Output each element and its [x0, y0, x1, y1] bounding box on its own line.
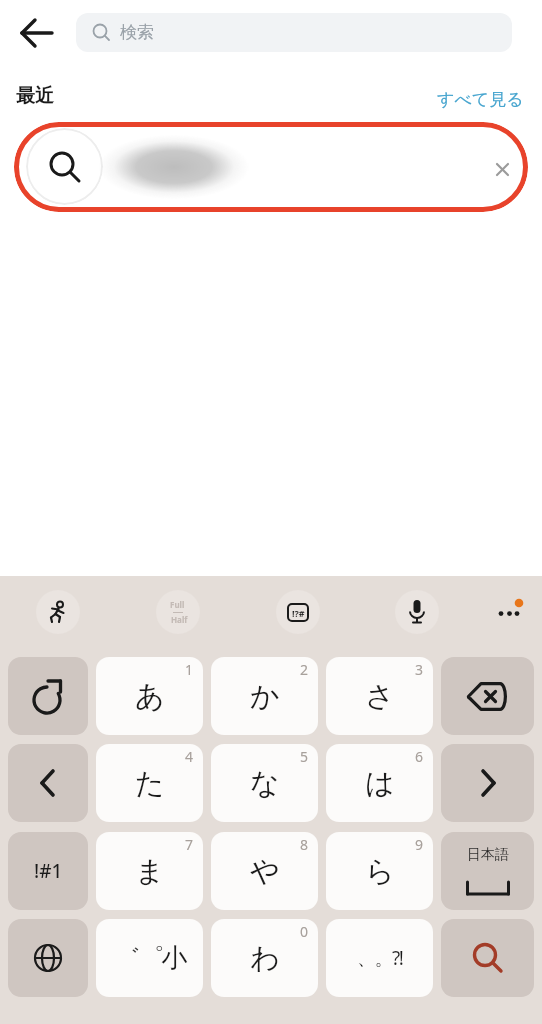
staticText: ま [135, 853, 165, 890]
staticText: や [250, 853, 280, 890]
button[interactable] [395, 590, 439, 634]
staticText: 7 [185, 835, 194, 854]
staticText: 最近 [16, 84, 54, 108]
button[interactable] [441, 919, 534, 997]
staticText: Full [170, 599, 185, 610]
button[interactable]: た [96, 744, 203, 822]
button[interactable]: は [326, 744, 433, 822]
staticText: 2 [300, 660, 309, 679]
staticText: 、。?! [357, 945, 403, 971]
staticText: 4 [185, 747, 194, 766]
staticText: 日本語 [467, 846, 509, 864]
button[interactable]: ま [96, 832, 203, 910]
staticText: 5 [300, 747, 309, 766]
staticText: 3 [415, 660, 424, 679]
button[interactable] [8, 919, 88, 997]
staticText: さ [365, 678, 395, 715]
button[interactable]: や [211, 832, 318, 910]
button[interactable]: あ [96, 657, 203, 735]
button[interactable]: か [211, 657, 318, 735]
button[interactable]: 検索 [76, 13, 512, 52]
button[interactable]: 、。?! [326, 919, 433, 997]
staticText: ゛゜小 [114, 942, 185, 975]
staticText: な [250, 765, 280, 802]
button[interactable] [485, 152, 519, 186]
staticText: あ [135, 678, 165, 715]
staticText: ら [365, 853, 395, 890]
staticText: 8 [300, 835, 309, 854]
button[interactable]: !#1 [8, 832, 88, 910]
staticText: Half [171, 614, 188, 625]
staticText: 1 [185, 660, 194, 679]
staticText: 9 [415, 835, 424, 854]
button[interactable] [36, 590, 80, 634]
staticText: 検索 [120, 22, 154, 43]
button[interactable]: 日本語 [441, 832, 534, 910]
button[interactable] [14, 122, 528, 212]
button[interactable]: ら [326, 832, 433, 910]
button[interactable] [441, 744, 534, 822]
staticText: 6 [415, 747, 424, 766]
button[interactable] [441, 657, 534, 735]
button[interactable]: すべて見る [424, 86, 524, 112]
button[interactable] [487, 591, 531, 635]
button[interactable]: な [211, 744, 318, 822]
staticText: !?# [292, 607, 305, 619]
button[interactable] [8, 744, 88, 822]
button[interactable] [8, 657, 88, 735]
staticText: た [135, 765, 165, 802]
staticText: !#1 [34, 858, 63, 884]
staticText: 0 [300, 922, 309, 941]
button[interactable]: !?# [276, 590, 320, 634]
staticText: か [250, 678, 280, 715]
button[interactable]: さ [326, 657, 433, 735]
button[interactable]: Full [156, 590, 200, 634]
staticText: すべて見る [437, 89, 524, 110]
button[interactable] [14, 13, 58, 53]
button[interactable]: ゛゜小 [96, 919, 203, 997]
staticText: は [365, 765, 395, 802]
staticText: わ [250, 940, 280, 977]
button[interactable]: わ [211, 919, 318, 997]
